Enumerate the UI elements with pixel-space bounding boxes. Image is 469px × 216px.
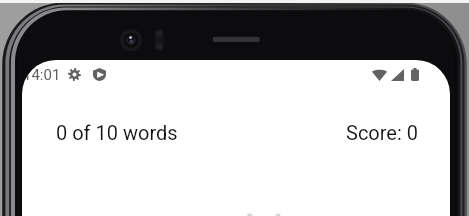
button[interactable]: Protected xyxy=(93,68,106,81)
staticText: Score: 0 xyxy=(346,121,418,144)
staticText: 14:01 xyxy=(23,66,61,84)
staticText: 0 of 10 words xyxy=(56,121,178,144)
button[interactable]: Settings xyxy=(68,68,81,81)
